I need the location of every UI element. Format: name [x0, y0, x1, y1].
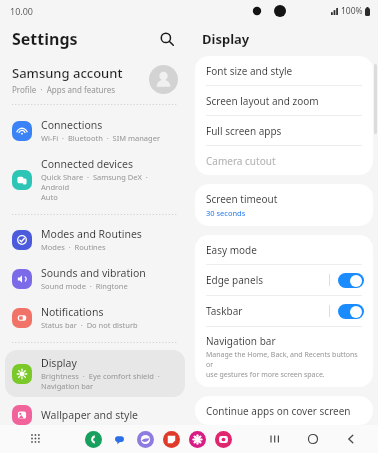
staticText: Screen timeout — [206, 192, 278, 206]
staticText: Brightness · Eye comfort shield · Naviga… — [41, 371, 160, 391]
staticText: 10.00 — [10, 5, 34, 17]
staticText: Manage the Home, Back, and Recents butto… — [206, 350, 362, 380]
button[interactable]: Easy mode — [195, 235, 373, 264]
staticText: Quick Share · Samsung DeX · Android Auto — [41, 172, 179, 202]
staticText: 100% — [341, 5, 363, 17]
button[interactable]: Taskbar — [195, 296, 373, 326]
button[interactable]: BROWSER — [137, 431, 154, 448]
staticText: Continue apps on cover screen — [206, 404, 351, 418]
button[interactable]: Home — [300, 426, 326, 452]
staticText: Easy mode — [206, 243, 257, 257]
staticText: Modes and Routines — [41, 227, 142, 241]
button[interactable]: Sounds and vibration — [5, 260, 185, 297]
button[interactable]: Search — [154, 26, 180, 52]
button[interactable]: Recents — [262, 426, 288, 452]
button[interactable]: CAM — [215, 431, 232, 448]
staticText: Edge panels — [206, 273, 329, 287]
button[interactable]: Full screen apps — [195, 116, 373, 145]
button[interactable]: STAR — [189, 431, 206, 448]
staticText: Camera cutout — [206, 154, 276, 168]
button[interactable]: Display — [5, 350, 185, 397]
staticText: Full screen apps — [206, 124, 282, 138]
staticText: Connections — [41, 118, 103, 132]
staticText: Display — [202, 30, 250, 48]
button[interactable]: PHONE — [85, 431, 102, 448]
staticText: Settings — [12, 28, 78, 50]
button[interactable]: NOTE — [163, 431, 180, 448]
staticText: Profile · Apps and features — [12, 84, 116, 95]
staticText: Font size and style — [206, 64, 293, 78]
staticText: Navigation bar — [206, 334, 276, 348]
button[interactable]: Navigation bar — [195, 327, 373, 387]
button[interactable]: Edge panels toggle — [338, 273, 364, 288]
button[interactable]: Apps — [26, 429, 46, 449]
button[interactable]: Continue apps on cover screen — [195, 396, 373, 425]
staticText: Samsung account — [12, 64, 123, 82]
button[interactable]: Back — [338, 426, 364, 452]
staticText: Status bar · Do not disturb — [41, 320, 138, 330]
button[interactable]: Connections — [5, 112, 185, 149]
button[interactable]: Taskbar toggle — [338, 304, 364, 319]
staticText: Taskbar — [206, 304, 329, 318]
button[interactable]: Font size and style — [195, 56, 373, 85]
button[interactable]: Notifications — [5, 299, 185, 336]
button[interactable]: Wallpaper and style — [5, 399, 185, 431]
button[interactable]: Edge panels — [195, 265, 373, 295]
button[interactable]: Modes and Routines — [5, 221, 185, 258]
staticText: Sounds and vibration — [41, 266, 146, 280]
staticText: Notifications — [41, 305, 104, 319]
button[interactable]: Connected devices — [5, 151, 185, 208]
staticText: Sound mode · Ringtone — [41, 281, 128, 291]
staticText: Display — [41, 356, 77, 370]
staticText: 30 seconds — [206, 208, 246, 218]
staticText: Modes · Routines — [41, 242, 106, 252]
staticText: Screen layout and zoom — [206, 94, 319, 108]
button[interactable]: Samsung account — [0, 56, 190, 102]
staticText: Wi-Fi · Bluetooth · SIM manager — [41, 133, 160, 143]
button[interactable]: Camera cutout — [195, 146, 373, 175]
button[interactable]: Screen layout and zoom — [195, 86, 373, 115]
button[interactable]: Screen timeout — [195, 184, 373, 226]
staticText: Connected devices — [41, 157, 134, 171]
button[interactable]: MSG — [111, 431, 128, 448]
staticText: Wallpaper and style — [41, 408, 139, 422]
